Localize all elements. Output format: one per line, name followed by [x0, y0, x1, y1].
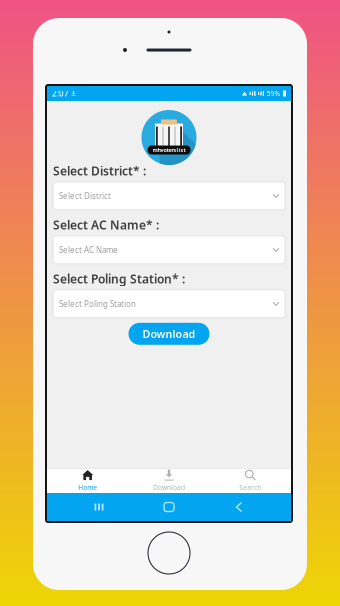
staticText: mhvoterslist — [152, 146, 185, 154]
staticText: Home — [78, 483, 97, 492]
staticText: Select Poling Station — [59, 298, 136, 309]
button[interactable]: Download — [128, 468, 210, 493]
button[interactable]: Recent apps — [77, 493, 121, 521]
staticText: Select Poling Station* : — [53, 271, 185, 287]
button[interactable]: Home — [47, 468, 128, 493]
staticText: Search — [239, 483, 261, 492]
button[interactable]: Search — [210, 468, 291, 493]
button[interactable]: Back — [217, 493, 261, 521]
staticText: Select AC Name — [59, 245, 118, 255]
button[interactable]: Select District — [53, 182, 285, 210]
button[interactable]: Select Poling Station — [53, 290, 285, 318]
button[interactable]: Home — [147, 493, 191, 521]
button[interactable]: Download — [128, 323, 209, 345]
staticText: 59% — [266, 89, 280, 98]
staticText: Download — [153, 483, 185, 492]
staticText: 2:07 — [52, 88, 69, 99]
staticText: Select District* : — [53, 163, 146, 179]
staticText: Select AC Name* : — [53, 217, 159, 233]
staticText: Select District — [59, 191, 111, 201]
staticText: Download — [142, 327, 195, 341]
button[interactable]: Select AC Name — [53, 236, 285, 264]
